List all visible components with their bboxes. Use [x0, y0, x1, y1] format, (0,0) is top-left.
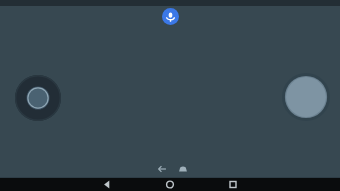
button[interactable]: Home	[176, 162, 190, 176]
button[interactable]: Voice input	[162, 8, 179, 25]
button[interactable]: Home	[163, 178, 177, 191]
button[interactable]: Back	[100, 178, 114, 191]
button[interactable]: Directional pad	[15, 75, 61, 121]
button[interactable]: Recent apps	[226, 178, 240, 191]
button[interactable]: Action button	[282, 73, 330, 121]
button[interactable]: Back	[155, 162, 169, 176]
